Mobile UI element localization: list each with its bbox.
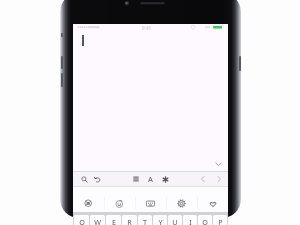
button[interactable]: Q bbox=[74, 215, 89, 225]
button[interactable]: Hide keyboard bbox=[213, 159, 224, 170]
button[interactable]: Photos bbox=[135, 195, 166, 212]
staticText: I bbox=[189, 217, 192, 225]
button[interactable]: Hearts bbox=[197, 195, 228, 212]
staticText: 9:41 bbox=[142, 25, 152, 31]
button[interactable]: O bbox=[198, 215, 212, 225]
staticText: A bbox=[148, 174, 153, 184]
button[interactable]: P bbox=[213, 215, 227, 225]
button[interactable]: Undo bbox=[91, 173, 103, 185]
staticText: E bbox=[112, 217, 116, 225]
staticText: Y bbox=[158, 217, 163, 225]
button[interactable]: Search bbox=[78, 173, 90, 185]
button[interactable]: Y bbox=[153, 215, 167, 225]
button[interactable]: Checklist bbox=[130, 173, 142, 185]
button[interactable]: Next field bbox=[213, 173, 225, 185]
button[interactable]: E bbox=[106, 215, 121, 225]
staticText: R bbox=[127, 217, 132, 225]
button[interactable]: W bbox=[90, 215, 105, 225]
button[interactable]: App Store bbox=[73, 195, 104, 212]
staticText: O bbox=[202, 217, 208, 225]
button[interactable]: T bbox=[138, 215, 152, 225]
button[interactable]: Previous field bbox=[197, 173, 209, 185]
button[interactable]: Text format bbox=[144, 173, 156, 185]
button[interactable]: Digital Touch bbox=[166, 195, 197, 212]
staticText: P bbox=[218, 217, 223, 225]
button[interactable]: Memoji bbox=[104, 195, 135, 212]
button[interactable]: R bbox=[122, 215, 137, 225]
button[interactable]: U bbox=[168, 215, 182, 225]
staticText: Q bbox=[79, 217, 85, 225]
button[interactable]: Markup bbox=[159, 173, 171, 185]
staticText: T bbox=[143, 217, 147, 225]
staticText: W bbox=[94, 217, 101, 225]
staticText: U bbox=[172, 217, 178, 225]
button[interactable]: I bbox=[183, 215, 197, 225]
